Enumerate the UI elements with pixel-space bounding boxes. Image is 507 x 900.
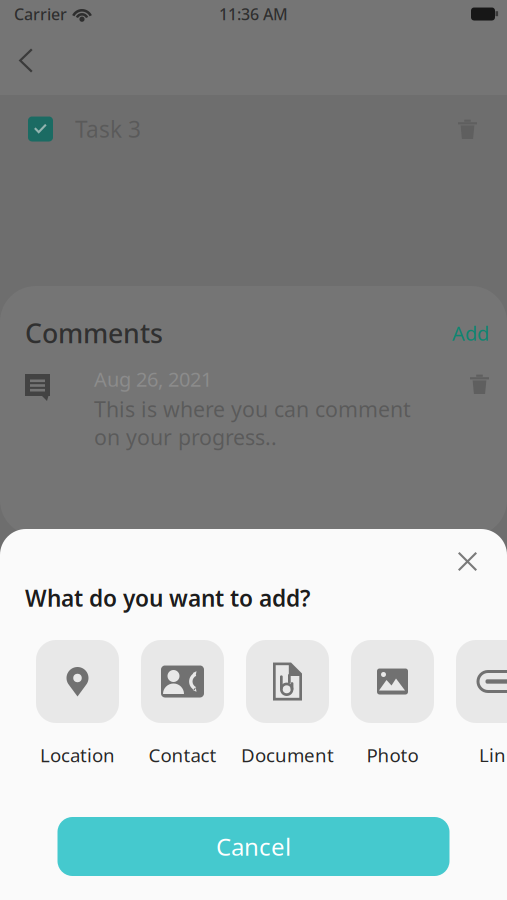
staticText: Cancel [216, 831, 291, 862]
button[interactable]: Cancel [57, 817, 449, 876]
staticText: 11:36 AM [219, 3, 288, 25]
button[interactable]: Document [246, 640, 329, 765]
button[interactable]: Photo [351, 640, 434, 765]
button[interactable]: Contact [141, 640, 224, 765]
staticText: Document [241, 743, 334, 767]
staticText: on your progress.. [94, 423, 277, 451]
staticText: Location [40, 743, 115, 767]
staticText: Task 3 [75, 114, 141, 144]
button[interactable]: Close [442, 541, 493, 582]
button[interactable]: Location [36, 640, 119, 765]
staticText: Carrier [14, 3, 67, 25]
staticText: Contact [148, 743, 216, 767]
staticText: Link [479, 743, 507, 767]
button[interactable]: Add [452, 320, 489, 346]
staticText: Add [452, 320, 489, 346]
staticText: What do you want to add? [25, 583, 310, 613]
button[interactable]: Task 3 [0, 95, 507, 163]
button[interactable]: Back [0, 38, 49, 82]
button[interactable]: Link [456, 640, 507, 765]
staticText: Photo [366, 743, 418, 767]
staticText: Comments [25, 315, 163, 351]
staticText: Aug 26, 2021 [94, 366, 212, 392]
staticText: This is where you can comment [94, 395, 411, 423]
